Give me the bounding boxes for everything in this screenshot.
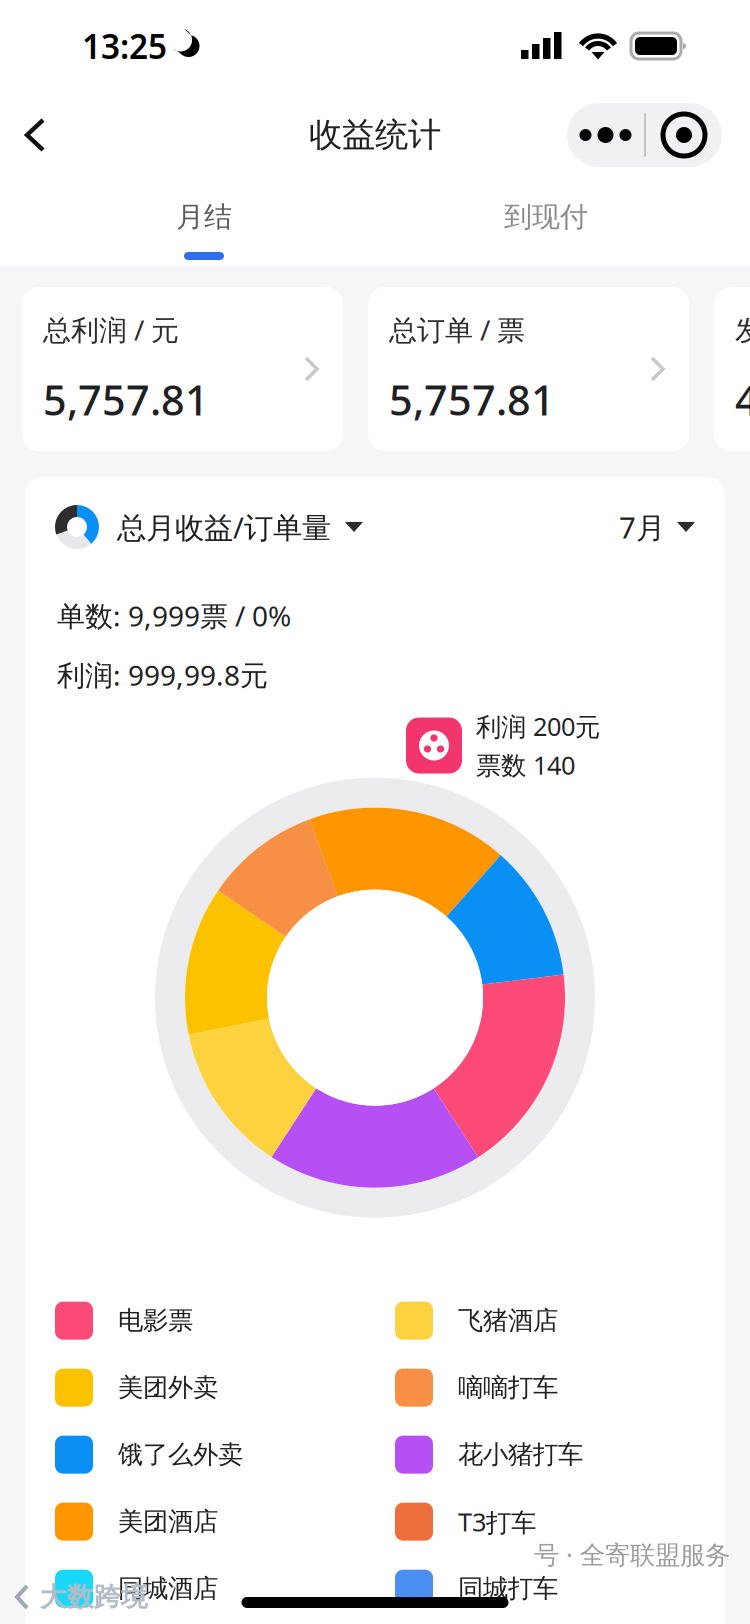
staticText: 飞猪酒店 (458, 1305, 558, 1336)
staticText: 到现付 (504, 200, 588, 234)
staticText: 利润 200元 (476, 709, 600, 743)
staticText: 利润: 999,99.8元 (57, 656, 268, 693)
staticText: 发单量 / 单 (735, 311, 750, 348)
staticText: 同城打车 (458, 1573, 558, 1604)
button[interactable]: 发单量 / 单 (714, 287, 750, 451)
staticText: 嘀嘀打车 (458, 1372, 558, 1403)
staticText: 4,120 (735, 372, 750, 427)
staticText: 总订单 / 票 (389, 311, 525, 348)
button[interactable]: 7月 (619, 507, 695, 546)
button[interactable]: 到现付 (375, 198, 717, 260)
button[interactable]: 总利润 / 元 (22, 287, 343, 451)
button[interactable]: 总订单 / 票 (368, 287, 689, 451)
staticText: 单数: 9,999票 / 0% (57, 597, 291, 634)
staticText: 同城酒店 (118, 1573, 218, 1604)
staticText: 7月 (619, 507, 665, 546)
staticText: 花小猪打车 (458, 1439, 583, 1470)
staticText: 号 · 全寄联盟服务 (534, 1537, 730, 1571)
staticText: 总利润 / 元 (43, 311, 179, 348)
staticText: 总月收益/订单量 (117, 507, 331, 546)
staticText: 饿了么外卖 (118, 1439, 243, 1470)
staticText: 13:25 (82, 24, 167, 68)
staticText: 月结 (176, 200, 232, 234)
button[interactable]: Back (5, 100, 67, 170)
staticText: 5,757.81 (43, 372, 209, 427)
staticText: 美团酒店 (118, 1506, 218, 1537)
staticText: T3打车 (458, 1505, 536, 1539)
staticText: 5,757.81 (389, 372, 555, 427)
button[interactable]: More (567, 103, 722, 167)
staticText: 票数 140 (476, 748, 575, 782)
button[interactable]: 月结 (33, 198, 375, 260)
staticText: 美团外卖 (118, 1372, 218, 1403)
button[interactable]: 总月收益/订单量 (99, 507, 363, 546)
staticText: 大数跨境 (40, 1581, 148, 1613)
staticText: 电影票 (118, 1305, 193, 1336)
staticText: 收益统计 (309, 114, 441, 155)
